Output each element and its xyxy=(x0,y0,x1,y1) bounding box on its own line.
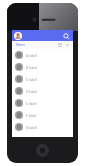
button[interactable]: D label xyxy=(12,85,73,97)
staticText: F label xyxy=(26,113,37,118)
staticText: D label xyxy=(26,89,38,94)
button[interactable]: B label xyxy=(12,61,73,73)
button[interactable]: Home xyxy=(36,144,49,157)
staticText: A label xyxy=(26,53,37,58)
staticText: E label xyxy=(26,101,37,106)
button[interactable]: G label xyxy=(12,121,73,133)
staticText: G label xyxy=(26,125,37,130)
button[interactable]: F label xyxy=(12,109,73,121)
button[interactable]: E label xyxy=(12,97,73,109)
staticText: Name xyxy=(16,43,26,47)
button[interactable]: Account xyxy=(14,32,22,40)
button[interactable]: Sort xyxy=(64,42,70,48)
button[interactable]: Name xyxy=(15,43,27,47)
button[interactable]: C label xyxy=(12,73,73,85)
staticText: B label xyxy=(26,65,37,70)
button[interactable]: A label xyxy=(12,49,73,61)
button[interactable]: Search xyxy=(61,31,71,41)
staticText: C label xyxy=(26,77,37,82)
button[interactable]: List view xyxy=(57,42,63,48)
